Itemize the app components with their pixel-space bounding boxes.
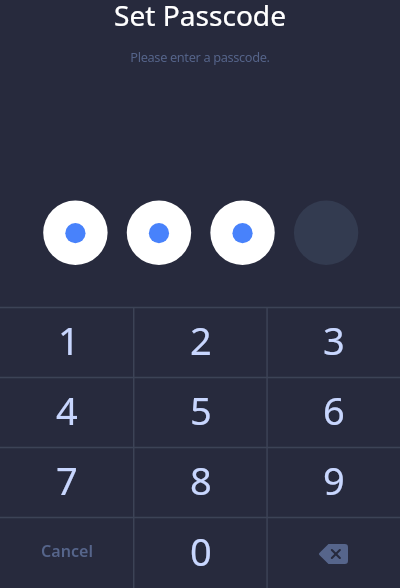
staticText: 6 xyxy=(323,384,345,436)
staticText: 5 xyxy=(190,384,212,436)
staticText: Cancel xyxy=(41,540,93,562)
button[interactable]: 0 xyxy=(134,517,267,588)
staticText: 7 xyxy=(56,454,78,506)
button[interactable]: 1 xyxy=(0,307,134,377)
staticText: 0 xyxy=(190,525,212,577)
button[interactable]: Delete xyxy=(267,517,400,588)
staticText: 9 xyxy=(323,454,345,506)
button[interactable]: 2 xyxy=(134,307,267,377)
staticText: 8 xyxy=(190,454,212,506)
button[interactable]: 9 xyxy=(267,447,400,517)
staticText: Set Passcode xyxy=(0,0,400,34)
staticText: 2 xyxy=(190,314,212,366)
button[interactable]: Cancel xyxy=(0,517,134,588)
staticText: 3 xyxy=(323,314,345,366)
button[interactable]: 5 xyxy=(134,377,267,447)
staticText: 4 xyxy=(56,384,78,436)
button[interactable]: 7 xyxy=(0,447,134,517)
button[interactable]: 3 xyxy=(267,307,400,377)
staticText: 1 xyxy=(58,314,80,366)
button[interactable]: 6 xyxy=(267,377,400,447)
button[interactable]: 8 xyxy=(134,447,267,517)
staticText: Please enter a passcode. xyxy=(0,48,400,65)
button[interactable]: 4 xyxy=(0,377,134,447)
